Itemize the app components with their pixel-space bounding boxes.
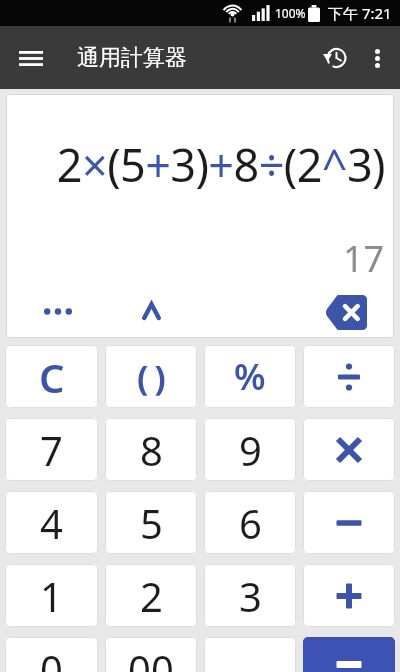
- staticText: 5: [140, 496, 163, 550]
- staticText: ( ): [137, 354, 166, 400]
- button[interactable]: [313, 36, 357, 80]
- button[interactable]: [357, 38, 397, 78]
- button[interactable]: [303, 637, 395, 672]
- staticText: 8: [140, 423, 163, 477]
- button[interactable]: 1: [5, 564, 98, 627]
- staticText: 9: [239, 423, 262, 477]
- staticText: 7: [40, 423, 63, 477]
- staticText: 2: [140, 569, 163, 623]
- button[interactable]: [303, 345, 395, 408]
- staticText: %: [234, 352, 266, 401]
- staticText: 2×(5+3)+8÷(2^3): [56, 134, 385, 195]
- staticText: 6: [239, 496, 262, 550]
- button[interactable]: 2: [105, 564, 197, 627]
- button[interactable]: 5: [105, 491, 197, 554]
- button[interactable]: [303, 491, 395, 554]
- button[interactable]: [324, 294, 368, 330]
- button[interactable]: 7: [5, 418, 98, 481]
- button[interactable]: %: [204, 345, 296, 408]
- button[interactable]: [34, 296, 82, 326]
- staticText: 3: [239, 569, 262, 623]
- button[interactable]: [131, 295, 171, 327]
- staticText: 17: [343, 234, 385, 283]
- button[interactable]: 9: [204, 418, 296, 481]
- button[interactable]: 6: [204, 491, 296, 554]
- button[interactable]: .: [204, 637, 296, 672]
- staticText: 00: [128, 642, 174, 672]
- button[interactable]: [11, 38, 51, 78]
- button[interactable]: 3: [204, 564, 296, 627]
- button[interactable]: ( ): [105, 345, 197, 408]
- staticText: 4: [40, 496, 63, 550]
- button[interactable]: [303, 564, 395, 627]
- staticText: C: [39, 350, 65, 404]
- button[interactable]: [303, 418, 395, 481]
- button[interactable]: C: [5, 345, 98, 408]
- staticText: 通用計算器: [77, 44, 187, 72]
- staticText: 100%: [275, 5, 306, 21]
- button[interactable]: 4: [5, 491, 98, 554]
- staticText: 0: [40, 642, 63, 672]
- staticText: 1: [40, 569, 63, 623]
- staticText: 下午 7:21: [328, 3, 392, 23]
- button[interactable]: 0: [5, 637, 98, 672]
- button[interactable]: 8: [105, 418, 197, 481]
- button[interactable]: 00: [105, 637, 197, 672]
